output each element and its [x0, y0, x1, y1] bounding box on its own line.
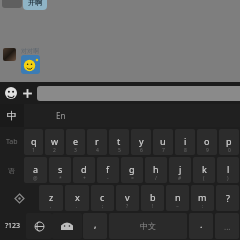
button[interactable]: d	[73, 157, 95, 183]
staticText: h	[153, 163, 159, 175]
staticText: En	[56, 110, 66, 121]
staticText: 8	[184, 147, 187, 154]
button[interactable]: 中	[0, 104, 24, 127]
staticText: y	[139, 135, 144, 147]
staticText: d	[81, 163, 87, 175]
staticText: *	[59, 175, 62, 182]
staticText: 0	[228, 147, 231, 154]
button[interactable]: q	[24, 129, 43, 155]
button[interactable]: y	[131, 129, 151, 155]
button[interactable]: j	[169, 157, 191, 183]
staticText: ?	[126, 203, 129, 210]
button[interactable]: p	[219, 129, 239, 155]
button[interactable]: a	[24, 157, 47, 183]
staticText: j	[179, 163, 182, 175]
button[interactable]: z	[39, 185, 63, 211]
staticText: g	[129, 163, 135, 175]
staticText: l	[227, 163, 230, 175]
staticText: c	[100, 191, 105, 203]
button[interactable]: Shift	[0, 185, 38, 211]
button[interactable]: ?	[216, 185, 239, 211]
staticText: n	[175, 191, 181, 203]
button[interactable]: m	[191, 185, 214, 211]
button[interactable]: Tab	[0, 129, 23, 155]
staticText: 2	[53, 147, 56, 154]
staticText: (	[203, 175, 205, 182]
staticText: e	[73, 135, 79, 147]
button[interactable]: c	[91, 185, 114, 211]
staticText: r	[95, 135, 99, 147]
button[interactable]: Emoji	[3, 85, 19, 101]
staticText: .	[76, 203, 78, 210]
staticText: u	[160, 135, 166, 147]
staticText: o	[204, 135, 210, 147]
staticText: 对对啊	[21, 47, 39, 55]
button[interactable]: f	[97, 157, 119, 183]
staticText: .	[200, 218, 203, 230]
button[interactable]: .	[189, 213, 213, 239]
button[interactable]: Add attachment	[19, 85, 35, 101]
button[interactable]: o	[197, 129, 217, 155]
staticText: p	[226, 135, 232, 147]
button[interactable]: i	[175, 129, 195, 155]
button[interactable]: e	[66, 129, 85, 155]
button[interactable]: Change language	[26, 213, 52, 239]
staticText: 开啊	[28, 0, 42, 7]
button[interactable]: l	[217, 157, 239, 183]
staticText: b	[150, 191, 156, 203]
staticText: ~	[176, 203, 179, 210]
staticText: Tab	[6, 137, 18, 147]
button[interactable]: x	[65, 185, 89, 211]
button[interactable]: w	[45, 129, 64, 155]
staticText: =	[131, 175, 134, 182]
button[interactable]: Avatar	[3, 48, 16, 61]
staticText: -	[107, 175, 109, 182]
button[interactable]: ,	[83, 213, 107, 239]
staticText: s	[58, 163, 63, 175]
staticText: ,	[94, 218, 97, 230]
staticText: ?	[226, 192, 230, 204]
staticText: a	[33, 163, 39, 175]
button[interactable]: h	[145, 157, 167, 183]
button[interactable]: v	[116, 185, 139, 211]
staticText: ;	[102, 203, 104, 210]
button[interactable]: 语	[0, 157, 23, 183]
staticText: )	[227, 175, 229, 182]
staticText: !	[152, 203, 154, 210]
staticText: ?123	[5, 221, 21, 231]
staticText: +	[83, 175, 86, 182]
staticText: 5	[118, 147, 121, 154]
button[interactable]: En	[24, 104, 240, 127]
button[interactable]: 开啊	[23, 0, 47, 10]
staticText: ,	[50, 203, 52, 210]
button[interactable]: ?123	[0, 213, 26, 239]
staticText: ...	[224, 221, 231, 232]
staticText: 4	[96, 147, 99, 154]
staticText: i	[184, 135, 187, 147]
staticText: @	[33, 175, 38, 182]
button[interactable]: b	[141, 185, 164, 211]
staticText: 1	[32, 147, 35, 154]
staticText: 9	[206, 147, 209, 154]
staticText: :	[202, 203, 204, 210]
staticText: m	[198, 191, 207, 203]
button[interactable]: k	[193, 157, 215, 183]
button[interactable]: s	[49, 157, 71, 183]
button[interactable]: u	[153, 129, 173, 155]
button[interactable]: g	[121, 157, 143, 183]
button[interactable]: n	[166, 185, 189, 211]
button[interactable]: t	[109, 129, 129, 155]
button[interactable]	[21, 55, 40, 74]
staticText: q	[31, 135, 37, 147]
staticText: /	[155, 175, 157, 182]
button[interactable]: r	[87, 129, 107, 155]
button[interactable]: 中文	[109, 213, 187, 239]
staticText: x	[75, 191, 80, 203]
staticText: t	[117, 135, 121, 147]
button[interactable]: Emoji keyboard	[52, 213, 82, 239]
staticText: 中文	[140, 221, 156, 231]
staticText: 7	[162, 147, 165, 154]
staticText: 3	[74, 147, 77, 154]
button[interactable]: More options	[215, 213, 239, 239]
